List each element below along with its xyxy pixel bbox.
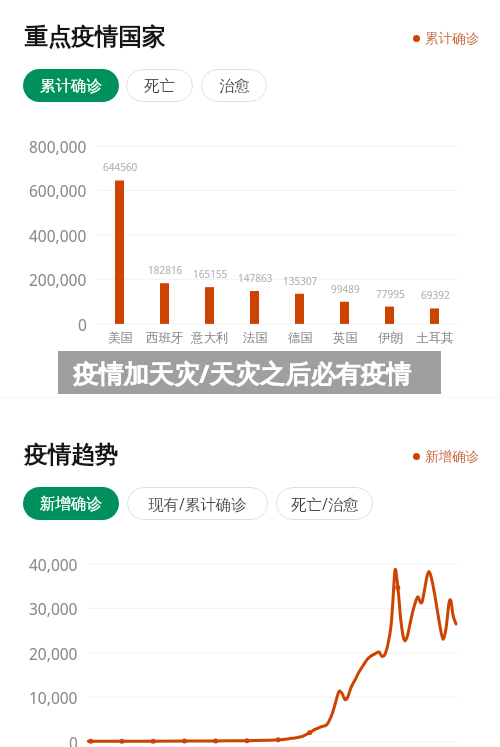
staticText: 147863 [238,271,273,285]
button[interactable]: 治愈 [201,69,267,102]
staticText: 现有/累计确诊 [148,493,247,514]
staticText: 西班牙 [146,330,184,346]
button[interactable]: 现有/累计确诊 [127,487,268,520]
staticText: 意大利 [191,330,229,346]
staticText: 伊朗 [378,330,403,346]
staticText: 600,000 [29,180,87,200]
staticText: 10,000 [29,687,78,707]
staticText: 200,000 [29,269,87,289]
staticText: 135307 [283,274,318,288]
staticText: 美国 [108,330,133,346]
staticText: 165155 [193,267,228,281]
staticText: 400,000 [29,225,87,245]
button[interactable]: 疫情加天灾/天灾之后必有疫情 [58,351,441,394]
staticText: 0 [78,314,87,334]
staticText: 死亡 [144,76,175,96]
button[interactable]: 死亡/治愈 [276,487,373,520]
staticText: 疫情趋势 [24,440,118,470]
staticText: 德国 [288,330,313,346]
staticText: 800,000 [29,136,87,156]
button[interactable]: 累计确诊 [23,69,119,102]
staticText: 累计确诊 [425,30,479,47]
staticText: 法国 [243,330,268,346]
staticText: 死亡/治愈 [291,493,359,514]
staticText: 69392 [421,288,450,302]
staticText: 30,000 [29,598,78,618]
staticText: 治愈 [219,76,250,96]
staticText: 99489 [331,282,360,296]
staticText: 新增确诊 [425,448,479,465]
staticText: 0 [69,732,78,747]
staticText: 疫情加天灾/天灾之后必有疫情 [73,356,411,390]
staticText: 77995 [376,287,405,301]
staticText: 新增确诊 [40,494,102,514]
staticText: 英国 [333,330,358,346]
staticText: 20,000 [29,643,78,663]
staticText: 644560 [103,160,138,174]
button[interactable]: 死亡 [126,69,193,102]
staticText: 40,000 [29,554,78,574]
button[interactable]: 新增确诊 [23,487,119,520]
staticText: 重点疫情国家 [24,22,165,52]
staticText: 土耳其 [416,330,454,346]
staticText: 累计确诊 [40,76,102,96]
staticText: 182816 [148,263,183,277]
